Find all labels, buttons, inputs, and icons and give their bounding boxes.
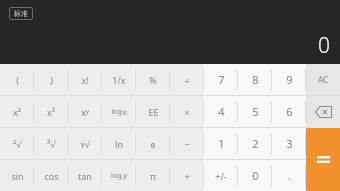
staticText: 2	[252, 136, 259, 151]
staticText: 0	[318, 31, 330, 60]
staticText: 1	[218, 136, 225, 151]
staticText: )	[50, 74, 53, 86]
button[interactable]: 1	[204, 128, 238, 159]
button[interactable]: AC	[306, 64, 340, 95]
staticText: ʏ√	[80, 138, 91, 150]
staticText: 1/x	[112, 74, 126, 86]
button[interactable]: 8	[238, 64, 272, 95]
staticText: 8	[252, 72, 259, 87]
button[interactable]: %	[136, 64, 170, 95]
staticText: −	[184, 138, 190, 150]
staticText: x³	[47, 106, 55, 118]
button[interactable]: x³	[34, 96, 68, 127]
button[interactable]: 6	[272, 96, 306, 127]
staticText: 5	[252, 104, 259, 119]
button[interactable]: ×	[170, 96, 204, 127]
staticText: 标准	[14, 9, 28, 18]
button[interactable]: x²	[0, 96, 34, 127]
button[interactable]: ln	[102, 128, 136, 159]
staticText: (	[16, 74, 19, 86]
button[interactable]: 5	[238, 96, 272, 127]
staticText: +/-	[215, 170, 227, 182]
button[interactable]: π	[136, 160, 170, 191]
staticText: +	[184, 170, 190, 182]
button[interactable]: +/-	[204, 160, 238, 191]
staticText: 9	[286, 72, 293, 87]
staticText: AC	[318, 74, 329, 85]
staticText: ×	[184, 106, 190, 118]
button[interactable]: ʏ√	[68, 128, 102, 159]
staticText: 7	[218, 72, 225, 87]
staticText: cos	[44, 170, 59, 182]
staticText: x!	[81, 74, 89, 86]
staticText: 6	[286, 104, 293, 119]
staticText: π	[150, 170, 156, 182]
button[interactable]: −	[170, 128, 204, 159]
staticText: %	[149, 74, 157, 86]
button[interactable]: 0	[238, 160, 272, 191]
staticText: ln	[115, 138, 123, 150]
button[interactable]: Equals	[306, 128, 340, 191]
button[interactable]: ÷	[170, 64, 204, 95]
staticText: sin	[11, 170, 24, 182]
button[interactable]: 9	[272, 64, 306, 95]
button[interactable]: x!	[68, 64, 102, 95]
button[interactable]: ³√	[34, 128, 68, 159]
button[interactable]: log,y	[102, 160, 136, 191]
button[interactable]: EE	[136, 96, 170, 127]
button[interactable]: +	[170, 160, 204, 191]
button[interactable]: cos	[34, 160, 68, 191]
staticText: log,y	[111, 171, 127, 181]
staticText: 3	[286, 136, 293, 151]
button[interactable]: 7	[204, 64, 238, 95]
button[interactable]: tan	[68, 160, 102, 191]
staticText: x²	[13, 106, 21, 118]
button[interactable]: e	[136, 128, 170, 159]
button[interactable]: 标准	[14, 9, 28, 18]
staticText: EE	[148, 106, 159, 118]
staticText: tan	[78, 170, 92, 182]
button[interactable]: )	[34, 64, 68, 95]
button[interactable]: log₁₀	[102, 96, 136, 127]
button[interactable]: 3	[272, 128, 306, 159]
button[interactable]: .	[272, 160, 306, 191]
button[interactable]: Backspace	[306, 96, 340, 128]
button[interactable]: xʸ	[68, 96, 102, 127]
staticText: ³√	[47, 138, 56, 150]
button[interactable]: 1/x	[102, 64, 136, 95]
button[interactable]: 2	[238, 128, 272, 159]
button[interactable]: 4	[204, 96, 238, 127]
staticText: 4	[218, 104, 225, 119]
button[interactable]: ²√	[0, 128, 34, 159]
staticText: 0	[252, 168, 259, 183]
staticText: e	[150, 138, 156, 150]
staticText: ÷	[184, 74, 190, 86]
button[interactable]: sin	[0, 160, 34, 191]
staticText: ²√	[13, 138, 22, 150]
staticText: log₁₀	[111, 107, 127, 117]
staticText: xʸ	[81, 106, 89, 118]
button[interactable]: (	[0, 64, 34, 95]
staticText: .	[288, 168, 291, 183]
